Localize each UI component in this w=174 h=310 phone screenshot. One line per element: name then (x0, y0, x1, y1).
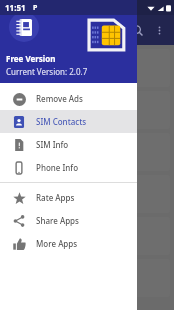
button[interactable]: Search (126, 19, 148, 41)
button[interactable] (4, 133, 170, 171)
staticText: More Apps (36, 238, 78, 249)
staticText: P (33, 3, 38, 13)
staticText: Share Apps (36, 215, 79, 226)
button[interactable]: More Apps (0, 232, 137, 255)
button[interactable] (4, 175, 170, 213)
button[interactable]: SIM Contacts (0, 110, 137, 133)
button[interactable]: Share Apps (0, 209, 137, 232)
staticText: Remove Ads (36, 93, 83, 104)
button[interactable]: Remove Ads (0, 87, 137, 110)
staticText: Rate Apps (36, 192, 75, 203)
button[interactable] (4, 259, 170, 297)
button[interactable]: More options (148, 19, 170, 41)
staticText: SIM Info (36, 139, 69, 150)
button[interactable]: Rate Apps (0, 186, 137, 209)
staticText: Free Version (6, 53, 56, 64)
staticText: Phone Info (36, 162, 79, 173)
button[interactable]: Phone Info (0, 156, 137, 179)
staticText: 11:51 (5, 2, 26, 13)
staticText: Current Version: 2.0.7 (6, 66, 88, 77)
button[interactable] (4, 49, 170, 87)
button[interactable] (4, 217, 170, 255)
button[interactable] (4, 91, 170, 129)
staticText: SIM Contacts (36, 116, 87, 127)
button[interactable]: SIM Info (0, 133, 137, 156)
